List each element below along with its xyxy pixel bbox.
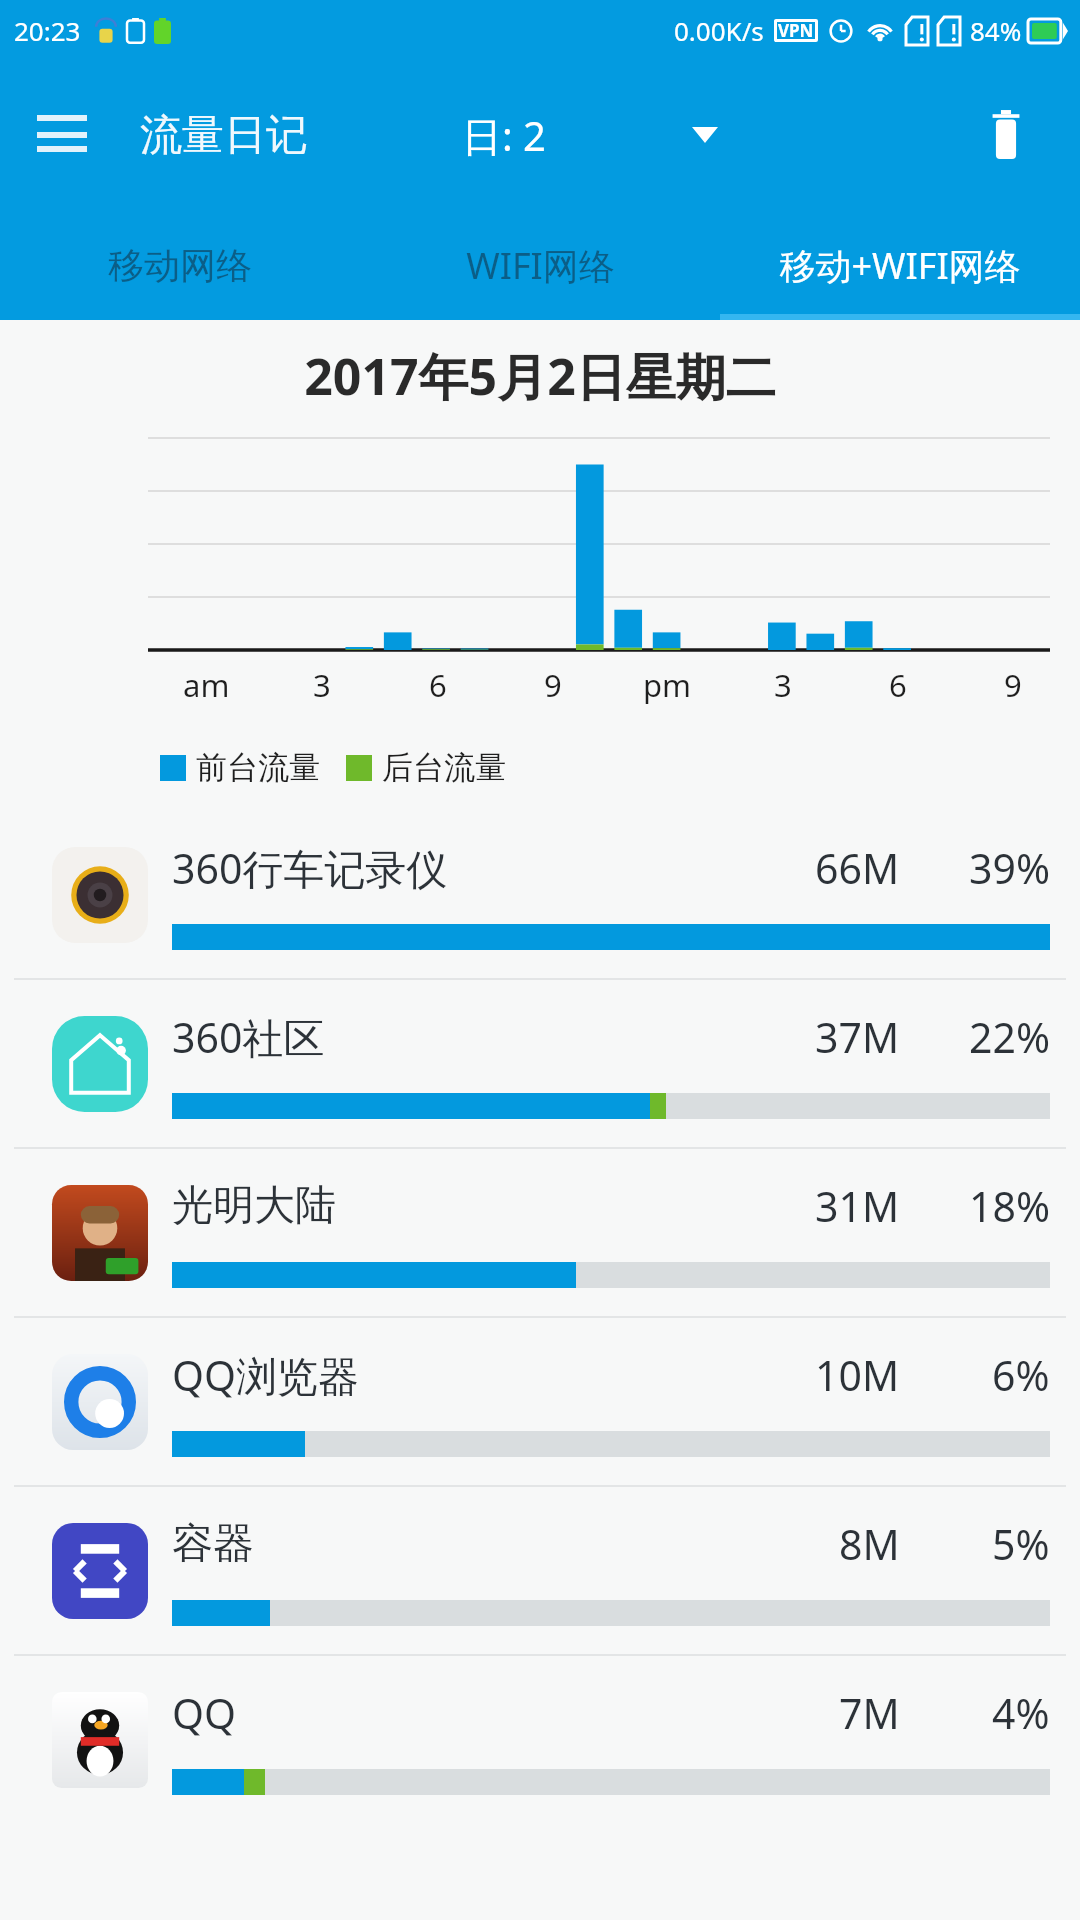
button[interactable]: WIFI网络 <box>360 210 720 320</box>
button[interactable]: 容器 <box>0 1487 1080 1654</box>
staticText: VPN <box>778 19 814 42</box>
staticText: 8M <box>839 1516 900 1572</box>
staticText: 31M <box>815 1178 900 1234</box>
staticText: 移动网络 <box>108 243 252 288</box>
staticText: 66M <box>815 840 900 896</box>
staticText: 9 <box>544 664 562 706</box>
button[interactable]: Menu <box>26 99 98 171</box>
button[interactable]: QQ <box>0 1656 1080 1823</box>
staticText: 360行车记录仪 <box>172 840 815 896</box>
staticText: 20:23 <box>14 13 81 48</box>
button[interactable]: Select period <box>660 90 750 180</box>
staticText: 3 <box>774 664 792 706</box>
staticText: 39% <box>969 840 1050 896</box>
staticText: 9 <box>1004 664 1022 706</box>
staticText: 84% <box>970 13 1022 48</box>
staticText: 移动+WIFI网络 <box>779 241 1021 290</box>
staticText: 4% <box>992 1685 1050 1741</box>
staticText: pm <box>643 664 692 706</box>
staticText: 18% <box>969 1178 1050 1234</box>
staticText: 容器 <box>172 1518 839 1570</box>
staticText: 10M <box>815 1347 900 1403</box>
staticText: 5% <box>992 1516 1050 1572</box>
staticText: 0.00K/s <box>674 13 764 48</box>
button[interactable]: 360社区 <box>0 980 1080 1147</box>
staticText: 后台流量 <box>382 748 506 787</box>
staticText: 3 <box>313 664 331 706</box>
button[interactable]: 日: 2 <box>462 108 546 163</box>
button[interactable]: 移动网络 <box>0 210 360 320</box>
staticText: 360社区 <box>172 1009 815 1065</box>
button[interactable]: 移动+WIFI网络 <box>720 210 1080 320</box>
staticText: WIFI网络 <box>466 241 615 290</box>
staticText: 37M <box>815 1009 900 1065</box>
staticText: 6 <box>889 664 907 706</box>
button[interactable]: QQ浏览器 <box>0 1318 1080 1485</box>
staticText: 流量日记 <box>140 109 308 162</box>
staticText: 前台流量 <box>196 748 320 787</box>
staticText: 光明大陆 <box>172 1180 815 1232</box>
staticText: 7M <box>839 1685 900 1741</box>
staticText: am <box>183 664 230 706</box>
staticText: 22% <box>969 1009 1050 1065</box>
staticText: 6% <box>992 1347 1050 1403</box>
staticText: QQ浏览器 <box>172 1347 815 1403</box>
staticText: QQ <box>172 1685 839 1741</box>
staticText: 2017年5月2日星期二 <box>0 342 1080 410</box>
button[interactable]: 360行车记录仪 <box>0 811 1080 978</box>
staticText: 6 <box>429 664 447 706</box>
button[interactable]: 光明大陆 <box>0 1149 1080 1316</box>
button[interactable]: Delete <box>962 91 1050 179</box>
